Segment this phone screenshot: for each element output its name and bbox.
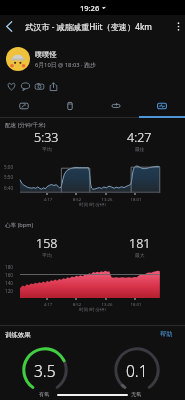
staticText: 13:26 [98, 301, 116, 307]
staticText: 18:01 [127, 196, 145, 202]
staticText: 160 [5, 272, 13, 278]
button[interactable]: Back [0, 15, 18, 37]
staticText: 帮助 [160, 330, 173, 338]
staticText: 时间 (时:分钟) [0, 306, 185, 312]
staticText: 有氧 [39, 391, 50, 398]
staticText: 19:26 [80, 3, 100, 13]
staticText: 配速 (分钟/千米) [5, 121, 46, 129]
button[interactable]: Photo [32, 79, 46, 93]
staticText: 18:01 [127, 301, 145, 307]
staticText: 158 [36, 235, 58, 252]
button[interactable]: Profile [6, 47, 30, 71]
button[interactable]: Share [46, 79, 60, 93]
button[interactable]: Comment [18, 79, 32, 93]
staticText: 8:52 [68, 196, 86, 202]
staticText: 4:17 [39, 196, 57, 202]
staticText: 0.1 [126, 360, 148, 381]
staticText: 13:26 [98, 196, 116, 202]
staticText: 6月10日 @ 18:03 · 跑步 [35, 61, 96, 69]
staticText: 训练效果 [5, 331, 31, 339]
staticText: 武汉市 - 减脂减重Hiit（变速）4km [25, 21, 152, 32]
staticText: 6:40 [4, 185, 14, 191]
button[interactable]: More options [171, 15, 185, 37]
staticText: 4:27 [127, 129, 152, 146]
staticText: 平均 [42, 146, 52, 152]
staticText: 5:00 [4, 164, 14, 170]
staticText: 时间 (时:分钟) [0, 201, 185, 207]
staticText: 5:50 [4, 174, 14, 180]
staticText: 140 [5, 280, 13, 286]
staticText: 120 [5, 288, 13, 294]
button[interactable]: 帮助 [160, 330, 173, 338]
staticText: 5:33 [34, 129, 59, 146]
button[interactable]: Map [0, 96, 47, 116]
staticText: 8:52 [68, 301, 86, 307]
button[interactable]: Like [4, 79, 18, 93]
staticText: 无氧 [131, 391, 142, 398]
staticText: 3.5 [34, 360, 56, 381]
staticText: 平均 [42, 252, 52, 258]
button[interactable]: Charts [139, 96, 185, 116]
staticText: 180 [5, 264, 13, 270]
staticText: 最佳 [135, 146, 145, 152]
staticText: 181 [129, 235, 151, 252]
staticText: 心率 (bpm) [5, 221, 34, 229]
staticText: 最大 [135, 252, 145, 258]
button[interactable]: Details [47, 96, 93, 116]
staticText: 4:17 [39, 301, 57, 307]
button[interactable]: Laps [93, 96, 139, 116]
staticText: 噗噗怪 [35, 50, 57, 59]
